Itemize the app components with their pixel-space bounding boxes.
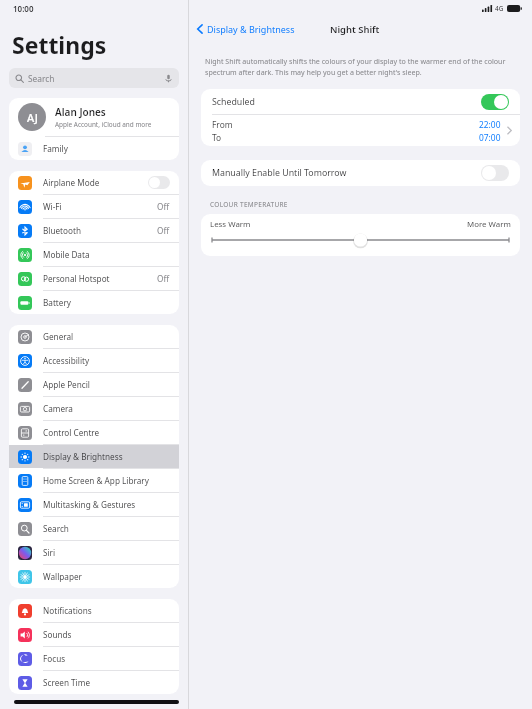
staticText: More Warm — [467, 219, 511, 230]
staticText: To — [212, 132, 222, 143]
button[interactable]: From — [201, 115, 520, 146]
button[interactable]: Off — [148, 176, 170, 189]
staticText: Siri — [43, 547, 56, 558]
staticText: Night Shift automatically shifts the col… — [205, 56, 516, 77]
staticText: Search — [28, 73, 55, 84]
button[interactable]: Display & Brightness — [194, 20, 298, 38]
button[interactable]: Accessibility — [9, 349, 179, 372]
button[interactable]: AJ — [9, 98, 179, 136]
button[interactable]: Manually Enable Until Tomorrow — [201, 160, 520, 186]
staticText: COLOUR TEMPERATURE — [210, 200, 288, 209]
button[interactable]: Battery — [9, 291, 179, 314]
button[interactable]: Apple Pencil — [9, 373, 179, 396]
staticText: Scheduled — [212, 96, 255, 108]
staticText: Wi-Fi — [43, 201, 62, 212]
staticText: Airplane Mode — [43, 177, 100, 188]
staticText: Personal Hotspot — [43, 273, 110, 284]
staticText: Mobile Data — [43, 249, 90, 260]
staticText: Wallpaper — [43, 571, 82, 582]
staticText: Off — [157, 225, 170, 236]
staticText: 4G — [495, 4, 504, 13]
staticText: Notifications — [43, 605, 92, 616]
button[interactable]: Camera — [9, 397, 179, 420]
staticText: Accessibility — [43, 355, 90, 366]
button[interactable]: Mobile Data — [9, 243, 179, 266]
staticText: Search — [43, 523, 69, 534]
staticText: Home Screen & App Library — [43, 475, 149, 486]
staticText: From — [212, 119, 233, 130]
button[interactable]: Scheduled — [201, 89, 520, 114]
button[interactable]: Siri — [9, 541, 179, 564]
staticText: General — [43, 331, 74, 342]
staticText: 22:00 — [479, 119, 501, 130]
button[interactable]: On — [481, 94, 509, 110]
button[interactable]: Colour temperature slider — [210, 233, 511, 247]
staticText: Apple Account, iCloud and more — [55, 120, 152, 129]
staticText: Screen Time — [43, 677, 91, 688]
staticText: Night Shift — [330, 23, 380, 36]
staticText: Camera — [43, 403, 73, 414]
button[interactable]: Wi-Fi — [9, 195, 179, 218]
staticText: AJ — [27, 110, 38, 125]
button[interactable]: Focus — [9, 647, 179, 670]
staticText: Less Warm — [210, 219, 251, 230]
button[interactable]: Bluetooth — [9, 219, 179, 242]
staticText: Display & Brightness — [207, 23, 295, 35]
staticText: Battery — [43, 297, 72, 308]
button[interactable]: Airplane Mode — [9, 171, 179, 194]
staticText: Apple Pencil — [43, 379, 90, 390]
staticText: Control Centre — [43, 427, 100, 438]
button[interactable]: Control Centre — [9, 421, 179, 444]
button[interactable]: Family — [9, 137, 179, 160]
button[interactable]: Off — [481, 165, 509, 181]
staticText: Multitasking & Gestures — [43, 499, 136, 510]
staticText: Sounds — [43, 629, 72, 640]
button[interactable]: Screen Time — [9, 671, 179, 694]
staticText: 07:00 — [479, 132, 501, 143]
button[interactable]: Home Screen & App Library — [9, 469, 179, 492]
staticText: Manually Enable Until Tomorrow — [212, 167, 347, 179]
staticText: Off — [157, 273, 170, 284]
staticText: Display & Brightness — [43, 451, 123, 462]
staticText: Focus — [43, 653, 66, 664]
button[interactable]: Search — [9, 68, 179, 88]
staticText: Off — [157, 201, 170, 212]
staticText: Alan Jones — [55, 105, 106, 119]
button[interactable]: Sounds — [9, 623, 179, 646]
staticText: Bluetooth — [43, 225, 81, 236]
staticText: Settings — [12, 29, 107, 60]
button[interactable]: Multitasking & Gestures — [9, 493, 179, 516]
button[interactable]: Wallpaper — [9, 565, 179, 588]
button[interactable]: Search — [9, 517, 179, 540]
button[interactable]: Personal Hotspot — [9, 267, 179, 290]
staticText: Family — [43, 143, 68, 154]
staticText: 10:00 — [13, 3, 34, 14]
button[interactable]: Display & Brightness — [9, 445, 179, 468]
button[interactable]: General — [9, 325, 179, 348]
button[interactable]: Notifications — [9, 599, 179, 622]
